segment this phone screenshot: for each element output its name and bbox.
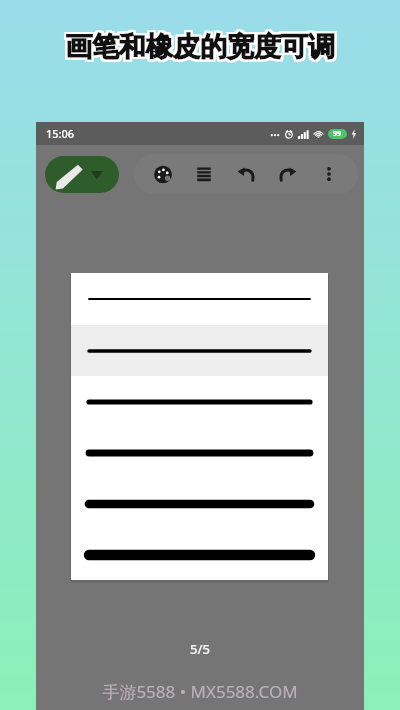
staticText: 画笔和橡皮的宽度可调 <box>67 28 337 62</box>
button[interactable]: Undo <box>227 155 265 193</box>
staticText: 画笔和橡皮的宽度可调 <box>67 30 337 64</box>
button[interactable]: Stroke width option 4 <box>71 427 328 478</box>
button[interactable]: More options <box>310 155 348 193</box>
button[interactable]: Stroke width option 3 <box>71 376 328 427</box>
button[interactable]: Redo <box>269 155 307 193</box>
staticText: 画笔和橡皮的宽度可调 <box>67 32 337 66</box>
staticText: 画笔和橡皮的宽度可调 <box>63 30 333 64</box>
staticText: 画笔和橡皮的宽度可调 <box>63 32 333 66</box>
button[interactable]: Color palette <box>144 155 182 193</box>
staticText: 画笔和橡皮的宽度可调 <box>65 30 335 64</box>
staticText: 画笔和橡皮的宽度可调 <box>65 32 335 66</box>
button[interactable]: Stroke width option 1 <box>71 273 328 325</box>
button[interactable]: Stroke width option 5 <box>71 478 328 529</box>
button[interactable]: Stroke width <box>185 155 223 193</box>
staticText: 画笔和橡皮的宽度可调 <box>63 28 333 62</box>
button[interactable]: Pen tool <box>45 156 119 193</box>
staticText: 99 <box>333 129 342 139</box>
button[interactable]: Stroke width option 6 <box>71 529 328 580</box>
staticText: 画笔和橡皮的宽度可调 <box>65 28 335 62</box>
staticText: 15:06 <box>46 126 75 141</box>
button[interactable]: Stroke width option 2 <box>71 325 328 376</box>
staticText: 5/5 <box>190 640 210 658</box>
staticText: 手游5588 • MX5588.COM <box>102 680 298 703</box>
